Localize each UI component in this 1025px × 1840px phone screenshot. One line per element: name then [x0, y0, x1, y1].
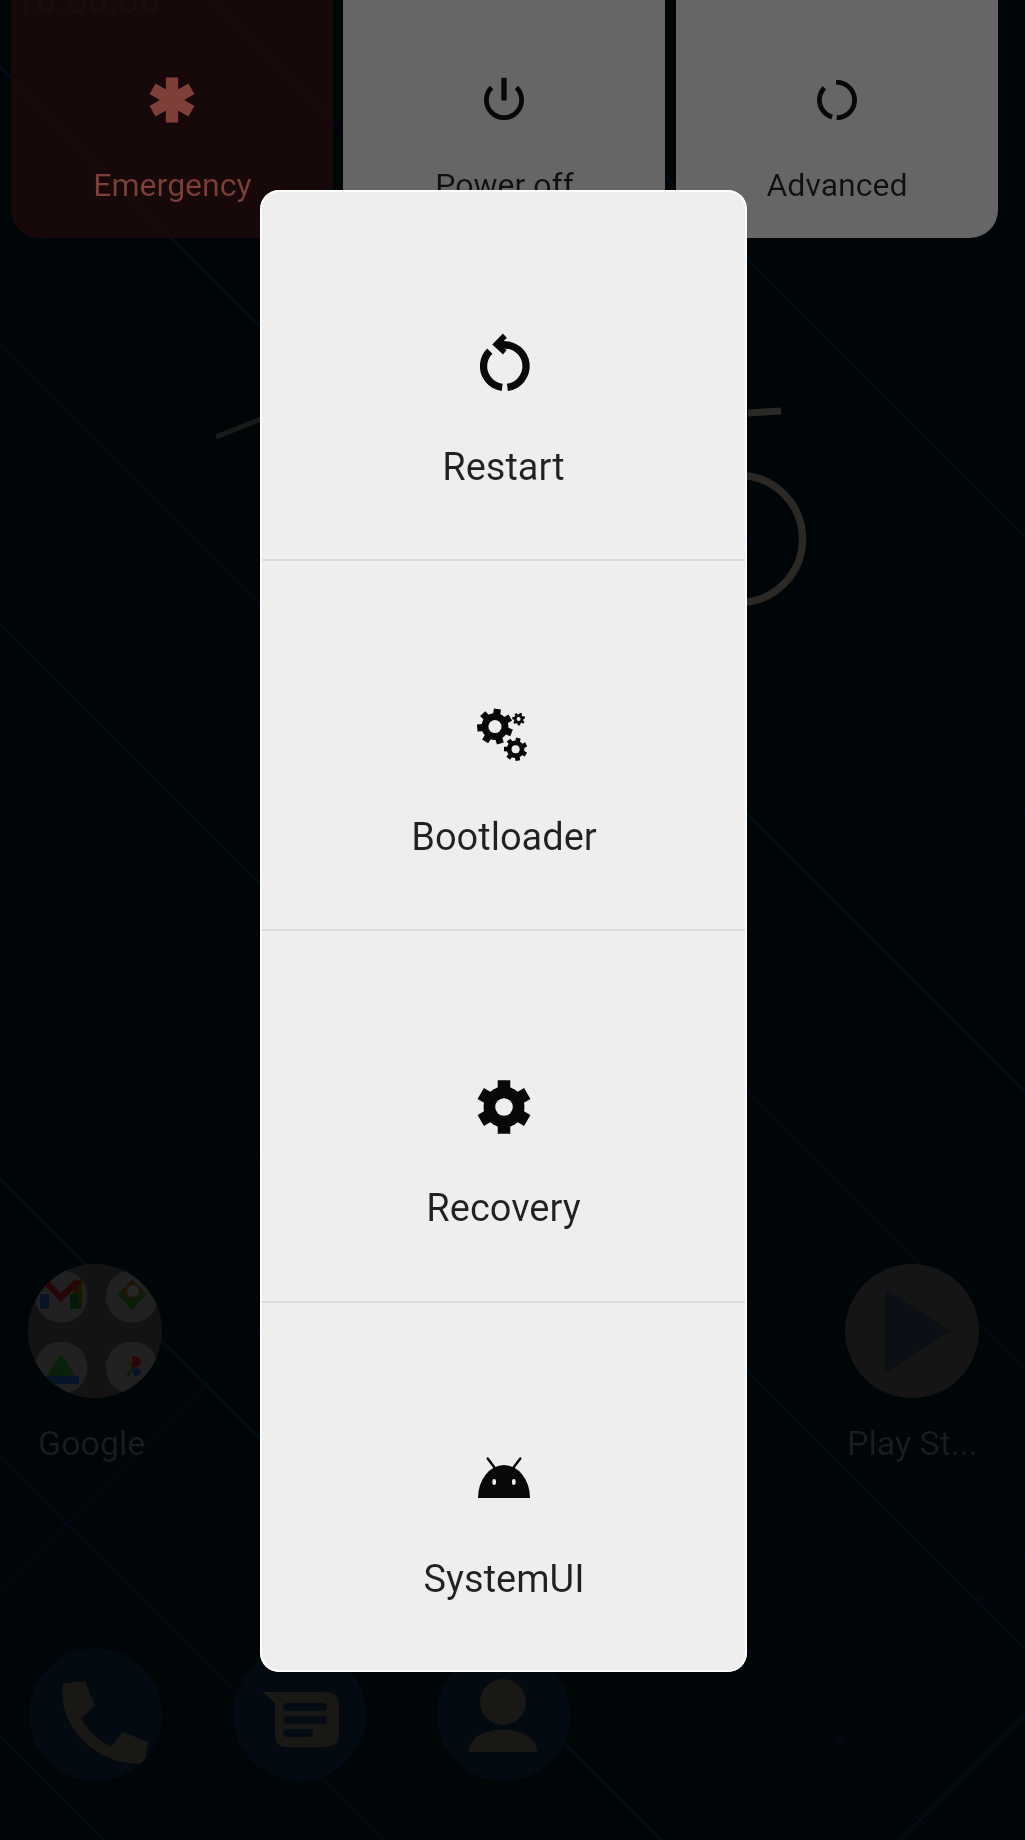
button[interactable]: Recovery: [260, 930, 747, 1302]
staticText: SystemUI: [423, 1557, 585, 1602]
button[interactable]: SystemUI: [260, 1302, 747, 1672]
button[interactable]: Restart: [260, 190, 747, 560]
button[interactable]: Contacts: [437, 1648, 570, 1781]
button[interactable]: Emergency: [11, 0, 333, 238]
button[interactable]: Bootloader: [260, 560, 747, 930]
staticText: Emergency: [93, 166, 252, 204]
button[interactable]: Power off: [343, 0, 665, 238]
staticText: Play St...: [847, 1423, 978, 1463]
staticText: Google: [38, 1423, 146, 1463]
button[interactable]: Play Store: [845, 1264, 979, 1398]
staticText: Advanced: [766, 166, 908, 204]
staticText: Restart: [442, 445, 565, 490]
staticText: Bootloader: [411, 815, 597, 860]
button[interactable]: Messages: [233, 1648, 366, 1781]
button[interactable]: Phone: [29, 1648, 162, 1781]
staticText: Recovery: [426, 1186, 581, 1231]
button[interactable]: Advanced: [676, 0, 998, 238]
staticText: Power off: [435, 166, 574, 204]
button[interactable]: Google folder: [28, 1264, 162, 1398]
